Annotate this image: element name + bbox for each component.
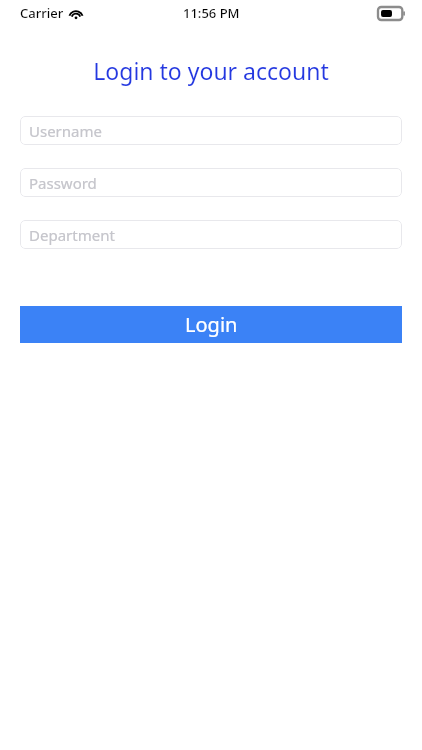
staticText: Password [29,173,97,193]
button[interactable]: Username [20,116,402,145]
staticText: Login to your account [0,55,422,86]
staticText: Carrier [20,4,64,22]
staticText: 11:56 PM [183,4,240,22]
staticText: Username [29,121,102,141]
staticText: Department [29,225,115,245]
button[interactable]: Login [20,306,402,343]
staticText: Login [185,311,238,338]
button[interactable]: Department [20,220,402,249]
button[interactable]: Password [20,168,402,197]
